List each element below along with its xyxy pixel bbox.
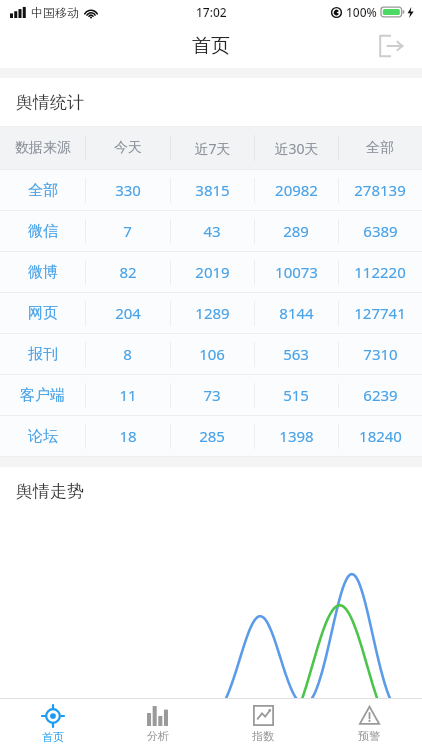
staticText: 278139	[354, 180, 406, 200]
staticText: 563	[283, 344, 309, 364]
staticText: 全部	[28, 181, 58, 200]
button[interactable]: 网页	[0, 293, 422, 333]
staticText: 204	[115, 303, 141, 323]
staticText: 6239	[363, 385, 398, 405]
staticText: 285	[199, 426, 225, 446]
staticText: 首页	[192, 34, 230, 58]
staticText: 数据来源	[15, 139, 71, 157]
button[interactable]: 指数	[210, 698, 316, 750]
button[interactable]: 预警	[316, 698, 422, 750]
button[interactable]: 微信	[0, 211, 422, 251]
staticText: 73	[203, 385, 221, 405]
staticText: 中国移动	[31, 5, 79, 20]
staticText: 8	[123, 344, 132, 364]
button[interactable]: 首页	[0, 698, 105, 750]
staticText: 18	[119, 426, 137, 446]
staticText: 106	[199, 344, 225, 364]
staticText: 8144	[279, 303, 314, 323]
staticText: 17:02	[196, 4, 227, 20]
staticText: 2019	[195, 262, 230, 282]
staticText: 首页	[42, 730, 64, 744]
staticText: 11	[119, 385, 137, 405]
staticText: 网页	[28, 304, 58, 323]
staticText: 1289	[195, 303, 230, 323]
staticText: 7310	[363, 344, 398, 364]
staticText: 舆情走势	[16, 481, 84, 502]
staticText: 515	[283, 385, 309, 405]
button[interactable]: 退出登录	[374, 29, 408, 63]
staticText: 微信	[28, 222, 58, 241]
staticText: 今天	[114, 139, 142, 157]
staticText: 1398	[279, 426, 314, 446]
staticText: 舆情统计	[16, 92, 84, 113]
staticText: 330	[115, 180, 141, 200]
staticText: 分析	[147, 729, 169, 743]
staticText: 18240	[359, 426, 402, 446]
button[interactable]: 客户端	[0, 375, 422, 415]
staticText: 报刊	[28, 345, 58, 364]
staticText: 客户端	[20, 386, 65, 405]
staticText: 127741	[354, 303, 406, 323]
staticText: 论坛	[28, 427, 58, 446]
staticText: 微博	[28, 263, 58, 282]
button[interactable]: 报刊	[0, 334, 422, 374]
staticText: 82	[119, 262, 137, 282]
staticText: 近30天	[274, 139, 319, 158]
staticText: 预警	[358, 729, 380, 743]
staticText: 112220	[354, 262, 406, 282]
staticText: 3815	[195, 180, 230, 200]
staticText: 全部	[366, 139, 394, 157]
staticText: 近7天	[194, 139, 231, 158]
button[interactable]: 微博	[0, 252, 422, 292]
staticText: 10073	[275, 262, 318, 282]
button[interactable]: 论坛	[0, 416, 422, 456]
staticText: 指数	[252, 729, 274, 743]
button[interactable]: 分析	[105, 698, 210, 750]
staticText: 289	[283, 221, 309, 241]
staticText: 20982	[275, 180, 318, 200]
staticText: 43	[203, 221, 221, 241]
button[interactable]: 全部	[0, 170, 422, 210]
staticText: 7	[123, 221, 132, 241]
staticText: 6389	[363, 221, 398, 241]
staticText: 100%	[346, 4, 377, 20]
